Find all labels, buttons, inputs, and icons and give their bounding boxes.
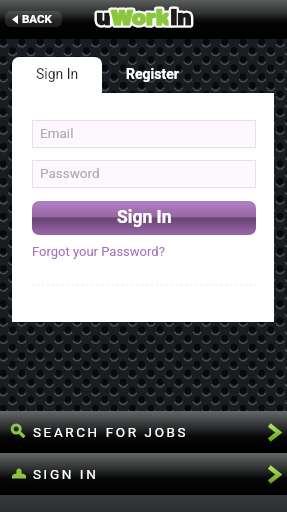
button[interactable]: Password: [32, 160, 256, 188]
staticText: Password: [40, 165, 100, 181]
staticText: BACK: [22, 12, 52, 25]
staticText: Sign In: [36, 66, 79, 82]
other: Account: [11, 466, 27, 482]
staticText: SEARCH FOR JOBS: [33, 424, 189, 440]
staticText: u: [96, 7, 111, 30]
staticText: SIGN IN: [33, 466, 99, 482]
staticText: Email: [40, 125, 74, 141]
staticText: in: [170, 7, 191, 30]
button[interactable]: BACK: [5, 11, 62, 27]
button[interactable]: Register: [102, 57, 202, 93]
staticText: Work: [111, 7, 170, 30]
other: Search: [11, 424, 27, 440]
staticText: Sign In: [117, 207, 172, 228]
button[interactable]: Account: [0, 453, 287, 495]
staticText: Work: [111, 7, 170, 30]
staticText: Register: [126, 66, 179, 82]
staticText: u: [96, 7, 111, 30]
staticText: in: [170, 7, 191, 30]
button[interactable]: Search: [0, 411, 287, 453]
button[interactable]: Sign In: [32, 201, 256, 235]
button[interactable]: Email: [32, 120, 256, 148]
button[interactable]: Forgot your Password?: [32, 244, 165, 259]
button[interactable]: Sign In: [12, 57, 102, 93]
